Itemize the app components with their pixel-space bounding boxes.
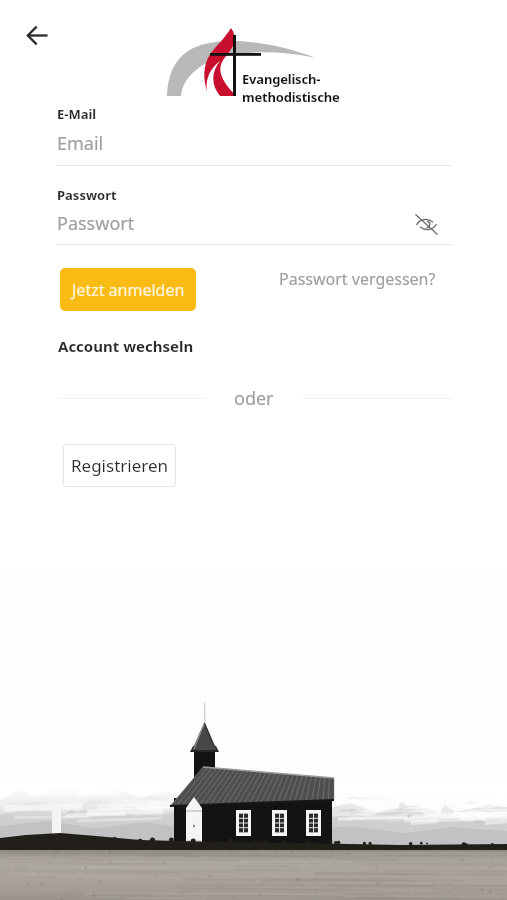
button[interactable]: Passwort vergessen? [273, 262, 442, 296]
button[interactable]: Back [19, 17, 55, 53]
staticText: Evangelisch- [242, 70, 321, 88]
staticText: Account wechseln [58, 336, 194, 356]
staticText: Passwort [57, 186, 117, 204]
button[interactable]: Account wechseln [56, 334, 196, 358]
button[interactable]: Show password [411, 209, 442, 240]
staticText: oder [234, 386, 274, 411]
staticText: E-Mail [57, 105, 97, 123]
staticText: methodistische [242, 88, 340, 106]
staticText: Registrieren [71, 454, 169, 477]
staticText: Email [57, 131, 104, 156]
staticText: Jetzt anmelden [72, 279, 185, 301]
button[interactable]: Jetzt anmelden [60, 268, 196, 311]
button[interactable]: Registrieren [63, 444, 176, 487]
staticText: Passwort [57, 211, 135, 236]
staticText: Passwort vergessen? [279, 268, 436, 290]
